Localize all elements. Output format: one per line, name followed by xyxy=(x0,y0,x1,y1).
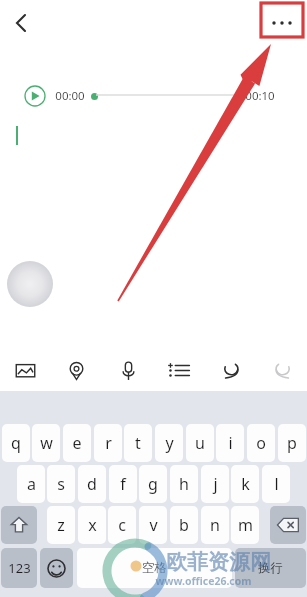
button[interactable]: u xyxy=(186,424,214,462)
button[interactable]: Back xyxy=(4,6,38,40)
button[interactable]: j xyxy=(201,465,229,503)
button[interactable]: t xyxy=(124,424,152,462)
staticText: n xyxy=(210,514,220,536)
staticText: h xyxy=(179,473,189,495)
staticText: m xyxy=(238,514,253,536)
button[interactable]: d xyxy=(78,465,106,503)
button[interactable]: m xyxy=(231,506,259,544)
button[interactable]: y xyxy=(155,424,183,462)
button[interactable]: z xyxy=(47,506,75,544)
staticText: j xyxy=(213,473,218,495)
staticText: 123 xyxy=(8,559,31,577)
staticText: w xyxy=(40,432,53,454)
staticText: y xyxy=(165,432,174,454)
button[interactable]: Insert image xyxy=(8,353,42,387)
button[interactable]: w xyxy=(32,424,60,462)
staticText: 空格 xyxy=(142,560,167,576)
button[interactable]: h xyxy=(170,465,198,503)
staticText: a xyxy=(27,473,36,495)
button[interactable]: Checklist xyxy=(162,353,196,387)
staticText: v xyxy=(149,514,158,536)
staticText: t xyxy=(135,432,141,454)
staticText: f xyxy=(120,473,126,495)
button[interactable]: Emoji xyxy=(40,548,73,588)
staticText: d xyxy=(87,473,97,495)
button[interactable]: a xyxy=(17,465,45,503)
staticText: 换行 xyxy=(258,560,283,576)
staticText: g xyxy=(148,473,158,495)
button[interactable]: i xyxy=(216,424,244,462)
button[interactable]: v xyxy=(139,506,167,544)
staticText: b xyxy=(179,514,189,536)
button[interactable]: l xyxy=(262,465,290,503)
button[interactable]: n xyxy=(201,506,229,544)
staticText: q xyxy=(11,432,21,454)
staticText: k xyxy=(241,473,250,495)
button[interactable]: Redo xyxy=(265,353,299,387)
button[interactable]: p xyxy=(278,424,306,462)
staticText: c xyxy=(118,514,126,536)
staticText: p xyxy=(287,432,297,454)
button[interactable]: g xyxy=(139,465,167,503)
button[interactable]: 123 xyxy=(1,548,37,588)
staticText: 00:10 xyxy=(245,88,275,104)
staticText: 欧菲资源网 xyxy=(166,549,271,575)
button[interactable]: c xyxy=(108,506,136,544)
button[interactable]: q xyxy=(2,424,30,462)
button[interactable]: Shift xyxy=(1,506,37,544)
button[interactable]: f xyxy=(109,465,137,503)
staticText: u xyxy=(195,432,205,454)
staticText: z xyxy=(57,514,65,536)
button[interactable]: Voice input xyxy=(111,353,145,387)
button[interactable]: o xyxy=(247,424,275,462)
staticText: www.office26.com xyxy=(155,574,252,588)
button[interactable]: x xyxy=(78,506,106,544)
button[interactable]: 换行 xyxy=(235,548,306,588)
button[interactable]: 空格 xyxy=(77,548,232,588)
staticText: r xyxy=(105,432,112,454)
button[interactable]: Location xyxy=(59,353,93,387)
button[interactable]: s xyxy=(47,465,75,503)
staticText: x xyxy=(88,514,97,536)
button[interactable]: Play xyxy=(24,85,46,107)
staticText: i xyxy=(228,432,233,454)
staticText: o xyxy=(256,432,266,454)
button[interactable]: Undo xyxy=(214,353,248,387)
button[interactable]: Attachment xyxy=(7,261,53,307)
staticText: 00:00 xyxy=(55,88,85,104)
button[interactable]: r xyxy=(94,424,122,462)
button[interactable]: More options xyxy=(265,6,299,40)
button[interactable]: Backspace xyxy=(270,506,306,544)
staticText: s xyxy=(57,473,65,495)
staticText: e xyxy=(72,432,82,454)
button[interactable]: b xyxy=(170,506,198,544)
staticText: l xyxy=(274,473,279,495)
button[interactable]: e xyxy=(63,424,91,462)
button[interactable]: k xyxy=(231,465,259,503)
